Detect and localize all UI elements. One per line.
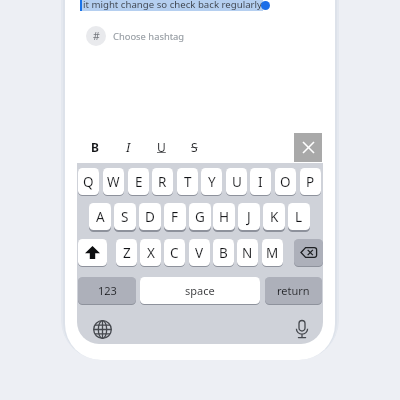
staticText: B <box>219 244 228 262</box>
button[interactable]: J <box>238 203 260 230</box>
staticText: G <box>195 208 205 226</box>
staticText: 123 <box>98 283 117 298</box>
button[interactable]: B <box>83 134 107 160</box>
button[interactable]: Q <box>78 168 99 195</box>
staticText: P <box>306 173 315 191</box>
button[interactable]: R <box>152 168 173 195</box>
button[interactable] <box>294 133 322 162</box>
staticText: E <box>135 173 143 191</box>
button[interactable]: I <box>116 134 140 160</box>
staticText: Choose hashtag <box>113 30 185 43</box>
staticText: U <box>157 139 166 155</box>
button[interactable]: I <box>250 168 271 195</box>
button[interactable]: Z <box>116 239 137 266</box>
button[interactable]: B <box>213 239 234 266</box>
button[interactable]: A <box>89 203 111 230</box>
staticText: D <box>145 208 155 226</box>
staticText: H <box>219 208 230 226</box>
staticText: Q <box>83 173 94 191</box>
button[interactable]: M <box>262 239 283 266</box>
button[interactable]: 123 <box>78 277 136 304</box>
button[interactable]: T <box>177 168 198 195</box>
staticText: F <box>171 208 179 226</box>
button[interactable]: U <box>226 168 247 195</box>
button[interactable]: K <box>263 203 285 230</box>
staticText: it might change so check back regularly <box>83 0 262 11</box>
staticText: Z <box>123 244 131 262</box>
staticText: Y <box>208 173 216 191</box>
staticText: V <box>195 244 204 262</box>
button[interactable]: F <box>164 203 186 230</box>
staticText: I <box>258 173 263 191</box>
staticText: return <box>277 283 310 298</box>
button[interactable]: O <box>275 168 296 195</box>
staticText: X <box>147 244 155 262</box>
staticText: I <box>126 139 131 155</box>
button[interactable]: P <box>300 168 321 195</box>
button[interactable]: S <box>114 203 136 230</box>
button[interactable]: Y <box>201 168 222 195</box>
button[interactable]: N <box>237 239 258 266</box>
button[interactable] <box>294 239 323 266</box>
staticText: S <box>191 139 198 155</box>
button[interactable] <box>90 317 114 341</box>
staticText: M <box>266 244 279 262</box>
button[interactable]: C <box>164 239 185 266</box>
button[interactable]: U <box>149 134 173 160</box>
button[interactable]: # <box>86 26 185 46</box>
staticText: N <box>242 244 253 262</box>
button[interactable]: L <box>288 203 310 230</box>
staticText: R <box>158 173 167 191</box>
staticText: C <box>170 244 179 262</box>
staticText: W <box>107 173 120 191</box>
button[interactable]: E <box>128 168 149 195</box>
button[interactable]: G <box>189 203 211 230</box>
staticText: A <box>96 208 105 226</box>
button[interactable]: H <box>213 203 235 230</box>
button[interactable] <box>290 317 314 341</box>
button[interactable]: D <box>139 203 161 230</box>
staticText: space <box>185 283 215 298</box>
button[interactable]: X <box>140 239 161 266</box>
staticText: U <box>232 173 242 191</box>
staticText: B <box>91 139 99 155</box>
staticText: O <box>280 173 291 191</box>
staticText: L <box>295 208 303 226</box>
button[interactable]: V <box>189 239 210 266</box>
staticText: K <box>270 208 279 226</box>
staticText: J <box>247 208 251 226</box>
button[interactable] <box>78 239 107 266</box>
button[interactable]: space <box>140 277 260 304</box>
staticText: T <box>184 173 192 191</box>
button[interactable]: W <box>103 168 124 195</box>
button[interactable]: S <box>182 134 206 160</box>
button[interactable]: return <box>265 277 322 304</box>
staticText: S <box>121 208 129 226</box>
staticText: # <box>93 29 100 43</box>
